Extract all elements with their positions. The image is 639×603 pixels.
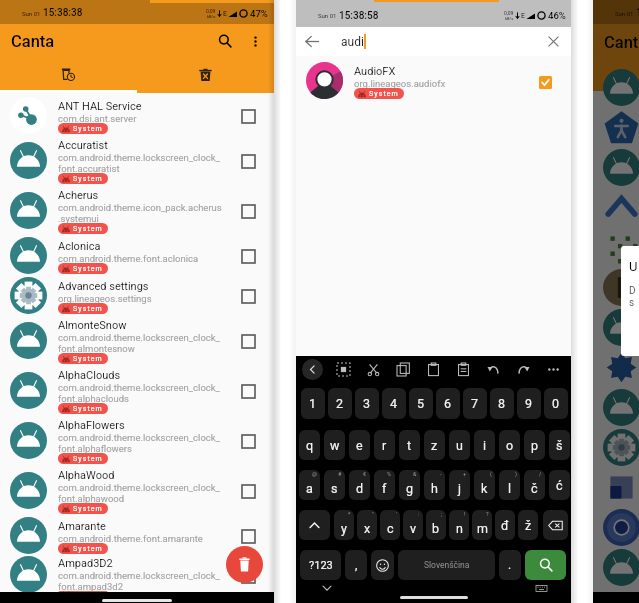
button[interactable]: AlphaClouds <box>0 363 274 413</box>
button[interactable]: 4 <box>382 388 406 419</box>
button[interactable]: đ <box>495 510 515 540</box>
button[interactable]: Select AlphaWood <box>233 476 263 506</box>
button[interactable]: AlphaWood <box>0 463 274 513</box>
button[interactable]: : <box>403 510 423 540</box>
button[interactable]: ' <box>380 510 400 540</box>
button[interactable]: o <box>499 430 520 460</box>
button[interactable]: 9 <box>517 388 541 419</box>
button[interactable]: ! <box>449 510 469 540</box>
button[interactable]: Accuratist <box>0 133 274 183</box>
button[interactable]: € <box>349 470 370 500</box>
button[interactable]: Comma <box>345 550 367 580</box>
button[interactable]: q <box>299 430 320 460</box>
button[interactable]: Select AlphaClouds <box>233 376 263 406</box>
button[interactable]: Select Ampad3D2 <box>233 561 263 591</box>
button[interactable]: Ampad3D2 <box>0 553 274 592</box>
button[interactable]: # <box>324 470 345 500</box>
button[interactable]: Acherus <box>0 183 274 233</box>
button[interactable]: Deselect AudioFX <box>530 67 560 97</box>
button[interactable]: u <box>449 430 470 460</box>
button[interactable]: 2 <box>328 388 352 419</box>
button[interactable]: ANT HAL Service <box>0 93 274 133</box>
button[interactable]: clip <box>448 358 478 380</box>
button[interactable]: % <box>374 470 395 500</box>
button[interactable]: / <box>524 470 545 500</box>
button[interactable]: w <box>324 430 345 460</box>
button[interactable]: paste <box>418 358 448 380</box>
button[interactable]: z <box>424 430 445 460</box>
button[interactable]: ? <box>472 510 492 540</box>
button[interactable]: copy <box>388 358 418 380</box>
button[interactable]: Select Acherus <box>233 196 263 226</box>
button[interactable]: 5 <box>409 388 433 419</box>
button[interactable]: cut <box>358 358 388 380</box>
button[interactable]: Select Advanced settings <box>233 281 263 311</box>
button[interactable]: Back <box>302 359 323 380</box>
button[interactable]: Removed apps <box>137 58 274 90</box>
button[interactable]: Search <box>212 28 238 54</box>
button[interactable]: Switch keyboard <box>532 580 550 596</box>
button[interactable]: Emoji <box>371 550 394 580</box>
staticText: Sun 01 <box>615 10 634 17</box>
staticText: & <box>413 471 417 477</box>
button[interactable]: 3 <box>355 388 379 419</box>
button[interactable]: Select Amarante <box>233 521 263 551</box>
button[interactable]: Uninstalled apps <box>0 58 137 90</box>
button[interactable]: " <box>357 510 377 540</box>
button[interactable]: Select AlmonteSnow <box>233 326 263 356</box>
button[interactable]: Select AlphaFlowers <box>233 426 263 456</box>
staticText: 15:38:58 <box>339 10 379 22</box>
button[interactable]: Symbols <box>300 550 341 580</box>
staticText: + <box>463 471 467 477</box>
button[interactable]: i <box>474 430 495 460</box>
button[interactable]: Select ANT HAL Service <box>233 101 263 131</box>
button[interactable]: Back <box>296 27 328 56</box>
button[interactable]: & <box>399 470 420 500</box>
button[interactable]: Search <box>525 550 566 580</box>
button[interactable]: Backspace <box>543 510 568 540</box>
button[interactable]: 8 <box>490 388 514 419</box>
button[interactable]: redo <box>508 358 538 380</box>
staticText: com.android.theme.lockscreen_clock_ font… <box>58 432 220 454</box>
button[interactable]: Aclonica <box>0 233 274 273</box>
staticText: % <box>387 471 392 477</box>
button[interactable]: Hide keyboard <box>318 580 336 596</box>
button[interactable]: Space <box>398 550 495 580</box>
button[interactable]: 1 <box>301 388 325 419</box>
button[interactable]: + <box>449 470 470 500</box>
button[interactable]: AlphaFlowers <box>0 413 274 463</box>
button[interactable]: Uninstall selected <box>226 546 263 583</box>
button[interactable]: p <box>524 430 545 460</box>
button[interactable]: - <box>424 470 445 500</box>
button[interactable]: Select Aclonica <box>233 241 263 271</box>
staticText: Ampad3D2 <box>58 557 113 570</box>
staticText: @ <box>312 471 317 477</box>
button[interactable]: ( <box>474 470 495 500</box>
button[interactable]: ž <box>518 510 538 540</box>
staticText: r <box>382 438 387 453</box>
button[interactable]: 0 <box>544 388 568 419</box>
staticText: System <box>73 505 103 513</box>
button[interactable]: Advanced settings <box>0 273 274 313</box>
button[interactable]: undo <box>478 358 508 380</box>
button[interactable]: e <box>349 430 370 460</box>
button[interactable]: more <box>538 358 568 380</box>
button[interactable]: * <box>334 510 354 540</box>
button[interactable]: Amarante <box>0 513 274 553</box>
button[interactable]: r <box>374 430 395 460</box>
button[interactable]: ; <box>426 510 446 540</box>
button[interactable]: š <box>549 430 570 460</box>
button[interactable]: ć <box>549 470 570 500</box>
button[interactable]: 7 <box>463 388 487 419</box>
button[interactable]: Clear <box>537 27 569 56</box>
button[interactable]: Period <box>499 550 521 580</box>
button[interactable]: More options <box>242 28 268 54</box>
button[interactable]: t <box>399 430 420 460</box>
button[interactable]: 6 <box>436 388 460 419</box>
button[interactable]: select <box>328 358 358 380</box>
button[interactable]: AlmonteSnow <box>0 313 274 363</box>
button[interactable]: ) <box>499 470 520 500</box>
button[interactable]: Shift <box>299 510 330 540</box>
button[interactable]: Select Accuratist <box>233 146 263 176</box>
button[interactable]: @ <box>299 470 320 500</box>
